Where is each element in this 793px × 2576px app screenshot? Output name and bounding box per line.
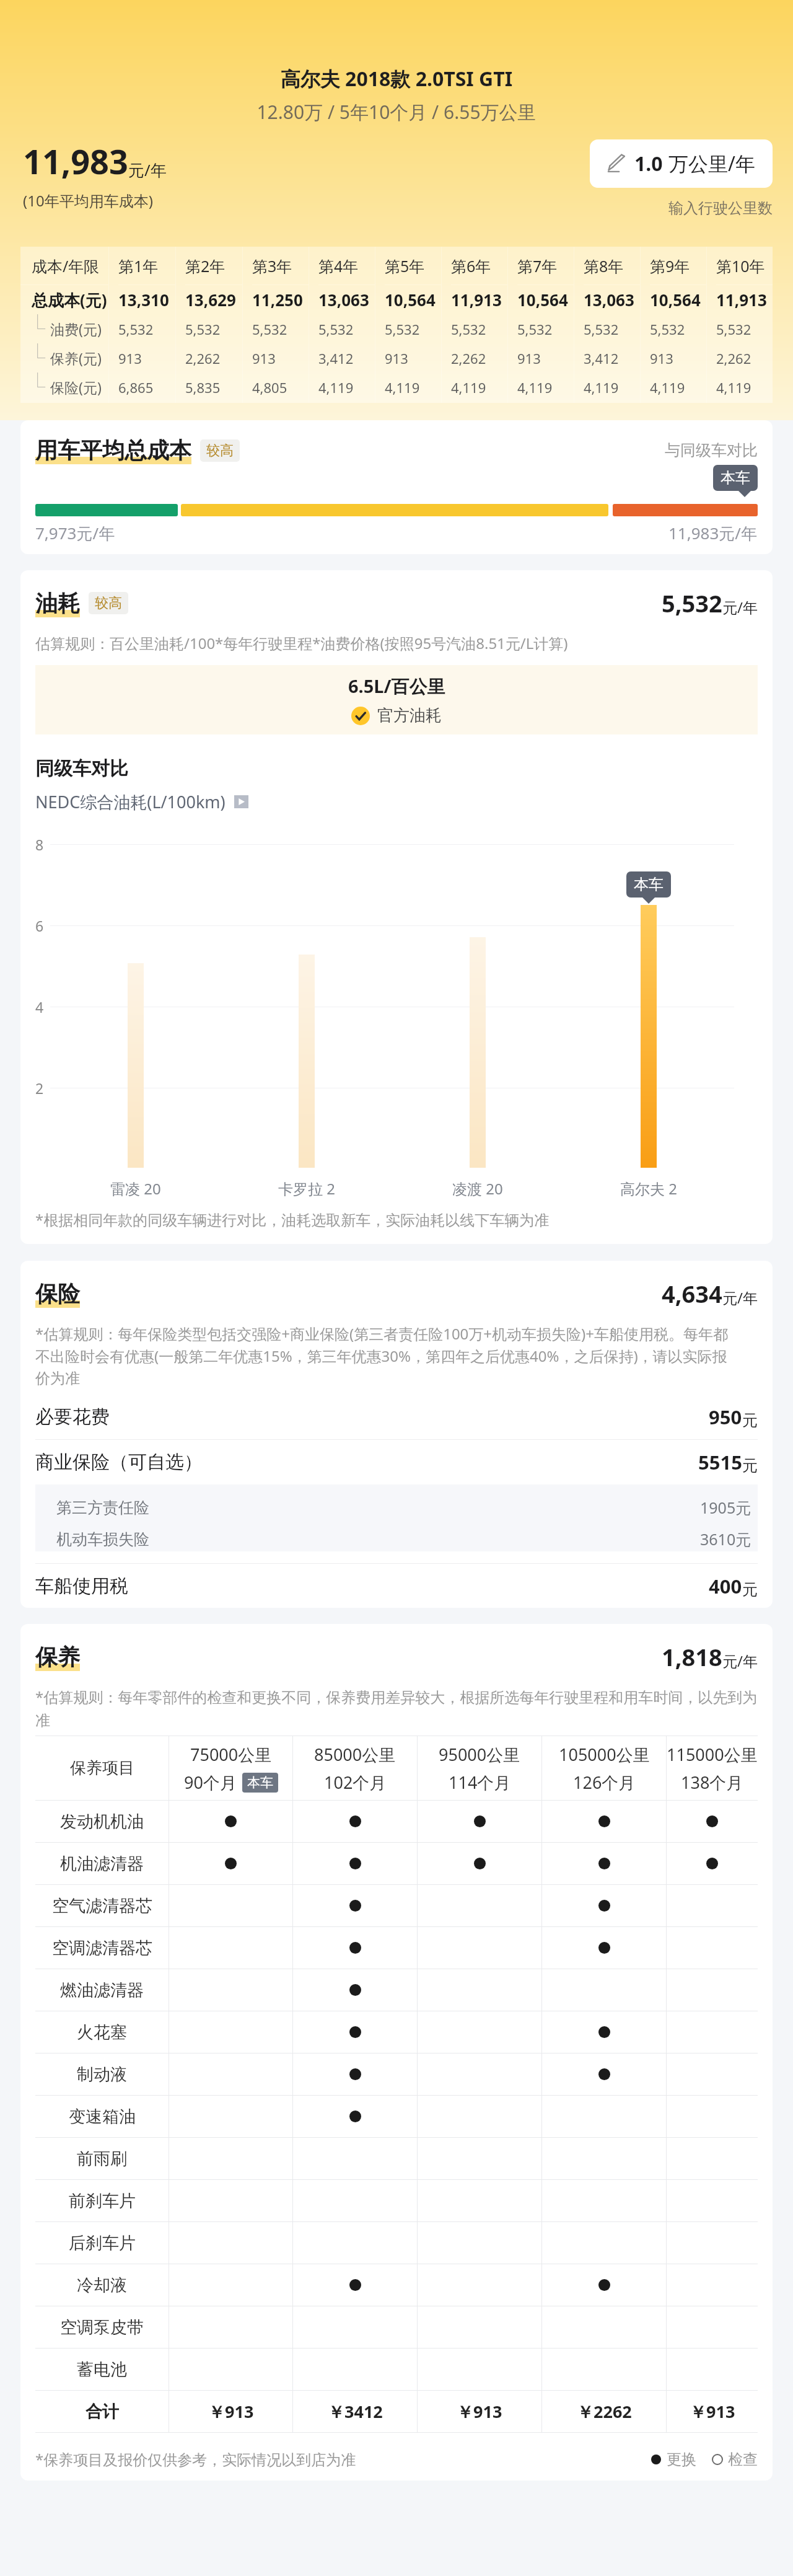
staticText: 913 [385,349,408,368]
staticText: 检查 [728,2450,758,2469]
staticText: 保养(元) [50,348,102,368]
staticText: 保险 [35,1280,80,1308]
staticText: 第4年 [318,255,359,276]
staticText: 4,634 [662,1277,722,1310]
staticText: 商业保险（可自选） [35,1450,203,1474]
staticText: 13,063 [584,289,634,311]
staticText: 11,983 [23,138,128,184]
staticText: 元/年 [722,597,758,617]
staticText: *估算规则：每年保险类型包括交强险+商业保险(第三者责任险100万+机动车损失险… [35,1323,732,1388]
staticText: 卡罗拉 2 [278,1178,335,1199]
staticText: 5,532 [650,320,685,338]
staticText: 2,262 [451,349,486,368]
staticText: 5,532 [584,320,619,338]
staticText: 元 [742,1456,758,1475]
staticText: 5,532 [451,320,486,338]
staticText: 第10年 [716,255,765,276]
staticText: 7,973元/年 [35,522,115,544]
staticText: 913 [118,349,142,368]
staticText: *估算规则：每年零部件的检查和更换不同，保养费用差异较大，根据所选每年行驶里程和… [35,1687,758,1730]
staticText: NEDC综合油耗(L/100km) [35,790,226,813]
staticText: 10,564 [385,289,436,311]
staticText: 4,119 [650,378,685,397]
staticText: 估算规则：百公里油耗/100*每年行驶里程*油费价格(按照95号汽油8.51元/… [35,633,568,653]
staticText: 输入行驶公里数 [668,199,773,218]
staticText: 10,564 [650,289,701,311]
staticText: (10年平均用车成本) [23,190,153,211]
staticText: 发动机机油 [60,1811,144,1832]
staticText: 凌渡 20 [452,1178,503,1199]
staticText: 5,532 [517,320,553,338]
staticText: 3,412 [584,349,619,368]
staticText: 第9年 [650,255,690,276]
staticText: 4,119 [385,378,420,397]
staticText: 空调泵皮带 [60,2317,144,2338]
staticText: 2,262 [716,349,751,368]
staticText: 4,119 [318,378,354,397]
staticText: 2 [35,1078,44,1098]
staticText: 4,805 [252,378,287,397]
staticText: ￥3412 [328,2400,383,2423]
staticText: 3610元 [700,1528,751,1550]
staticText: 用车平均总成本 [35,436,191,464]
staticText: 本车 [721,469,750,487]
button[interactable]: 编辑 [590,139,773,188]
staticText: 2,262 [185,349,221,368]
staticText: 115000公里 [667,1743,758,1766]
staticText: 11,913 [716,289,767,311]
staticText: 第7年 [517,255,558,276]
staticText: 高尔夫 2 [620,1178,677,1199]
staticText: 空调滤清器芯 [52,1938,152,1959]
staticText: 5,532 [662,587,722,619]
staticText: 5,532 [185,320,221,338]
staticText: 车船使用税 [35,1574,128,1598]
other: 播放视频 [234,795,248,808]
staticText: 较高 [95,594,122,612]
staticText: 11,913 [451,289,502,311]
staticText: 12.80万 / 5年10个月 / 6.55万公里 [0,99,793,125]
staticText: 85000公里 [314,1743,396,1766]
staticText: 后刹车片 [69,2233,136,2254]
staticText: 1.0 [634,150,663,177]
staticText: 6.5L/百公里 [348,674,445,699]
staticText: 5,532 [252,320,287,338]
staticText: 保养项目 [70,1758,134,1778]
staticText: ￥913 [208,2400,254,2423]
staticText: 制动液 [77,2064,127,2085]
staticText: ￥913 [690,2400,735,2423]
staticText: 第三方责任险 [56,1498,149,1517]
staticText: 必要花费 [35,1405,110,1429]
staticText: 燃油滤清器 [60,1980,144,2001]
staticText: 第1年 [118,255,159,276]
staticText: 变速箱油 [69,2106,136,2127]
staticText: 5,532 [318,320,354,338]
staticText: 11,983元/年 [668,522,758,544]
staticText: 114个月 [449,1771,511,1794]
staticText: 5,532 [716,320,751,338]
staticText: 较高 [206,442,234,459]
staticText: 前刹车片 [69,2190,136,2212]
staticText: 5,532 [118,320,154,338]
staticText: 13,063 [318,289,369,311]
staticText: 第2年 [185,255,226,276]
staticText: 4,119 [584,378,619,397]
staticText: ￥2262 [577,2400,632,2423]
staticText: 蓄电池 [77,2359,127,2380]
staticText: 6 [35,916,44,935]
staticText: 13,310 [118,289,169,311]
staticText: 成本/年限 [32,255,100,276]
staticText: 第5年 [385,255,425,276]
staticText: 75000公里 [190,1743,272,1766]
staticText: 官方油耗 [377,705,442,726]
staticText: 913 [252,349,276,368]
other: 编辑 [607,154,626,174]
staticText: 与同级车对比 [665,441,758,460]
staticText: 5,835 [185,378,221,397]
staticText: 万公里/年 [668,150,755,177]
staticText: 元/年 [722,1651,758,1671]
staticText: 95000公里 [439,1743,520,1766]
staticText: 同级车对比 [35,757,128,780]
staticText: 4,119 [716,378,751,397]
staticText: 元 [742,1580,758,1599]
staticText: 13,629 [185,289,236,311]
